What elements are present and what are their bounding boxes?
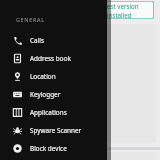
staticText: Calls [30,36,44,45]
staticText: Location [30,72,56,81]
button[interactable]: Spyware Scanner [0,121,107,139]
button[interactable]: Keylogger [0,85,107,103]
button[interactable]: est version [104,1,154,19]
button[interactable]: Calls [0,31,107,49]
staticText: Address book [30,54,71,63]
staticText: est version [107,2,139,10]
staticText: GENERAL [16,16,45,23]
button[interactable]: Address book [0,49,107,67]
staticText: installed [107,11,132,19]
button[interactable]: Location [0,67,107,85]
staticText: Keylogger [30,90,61,99]
staticText: Spyware Scanner [30,126,82,135]
button[interactable]: Block device [0,139,107,157]
button[interactable]: Applications [0,103,107,121]
staticText: Block device [30,144,67,153]
staticText: Applications [30,108,67,117]
